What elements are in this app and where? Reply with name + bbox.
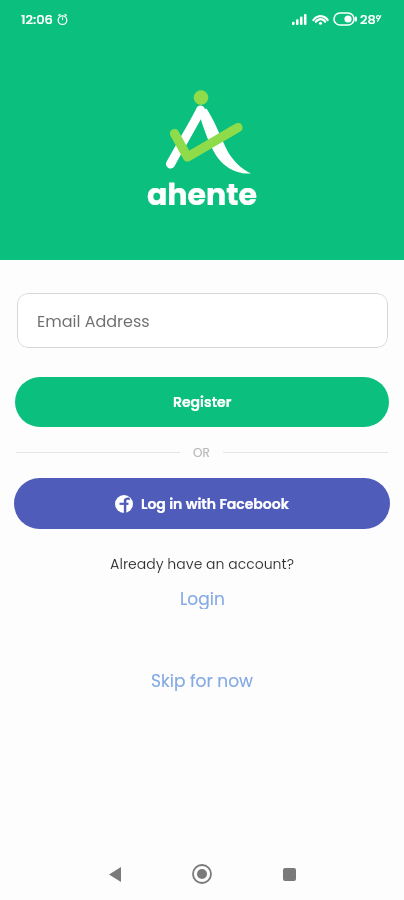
staticText: Log in with Facebook [141, 494, 289, 514]
button[interactable]: Back [88, 848, 142, 900]
button[interactable]: Register [15, 377, 389, 427]
staticText: 12:06 [21, 10, 53, 28]
staticText: Skip for now [151, 669, 253, 691]
staticText: Login [180, 587, 225, 609]
staticText: 28 [360, 10, 376, 28]
staticText: Already have an account? [110, 554, 294, 574]
button[interactable]: Login [154, 583, 251, 613]
button[interactable]: Skip for now [125, 665, 279, 695]
button[interactable]: Recents [262, 848, 316, 900]
button[interactable]: Log in with Facebook [14, 478, 390, 529]
staticText: OR [193, 444, 210, 461]
staticText: Register [173, 392, 232, 412]
button[interactable]: Email Address [17, 293, 388, 348]
staticText: Email Address [37, 310, 150, 332]
button[interactable]: Home [175, 848, 229, 900]
staticText: ahente [147, 174, 257, 216]
